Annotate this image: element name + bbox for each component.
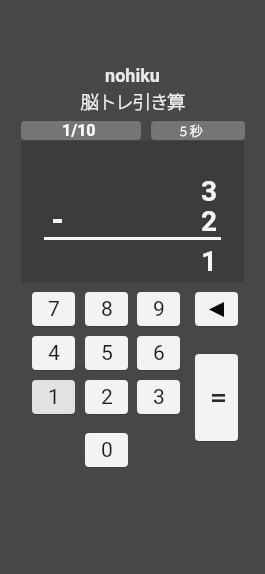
staticText: 脳トレ引き算 <box>0 88 265 115</box>
staticText: 5 秒 <box>180 121 203 140</box>
staticText: 1 <box>201 245 218 278</box>
staticText: 3 <box>201 175 218 208</box>
staticText: 2 <box>201 205 218 238</box>
button[interactable]: 5 <box>85 336 128 370</box>
button[interactable]: 4 <box>32 336 75 370</box>
staticText: 2 <box>101 385 113 410</box>
staticText: 6 <box>153 341 165 366</box>
button[interactable]: 5 秒 <box>151 121 245 140</box>
staticText: 5 <box>101 341 113 366</box>
staticText: 7 <box>48 297 60 322</box>
button[interactable]: 1 <box>32 380 75 414</box>
staticText: 1/10 <box>62 121 96 140</box>
staticText: 8 <box>101 297 113 322</box>
staticText: 9 <box>153 297 165 322</box>
button[interactable]: 6 <box>137 336 180 370</box>
button[interactable]: 1/10 <box>21 121 141 140</box>
button[interactable]: 7 <box>32 292 75 326</box>
button[interactable] <box>195 354 238 441</box>
button[interactable]: 9 <box>137 292 180 326</box>
staticText: nohiku <box>0 65 265 86</box>
staticText: 4 <box>48 341 60 366</box>
staticText: 0 <box>101 438 113 463</box>
button[interactable]: 3 <box>137 380 180 414</box>
button[interactable] <box>195 292 238 326</box>
staticText: 1 <box>48 385 60 410</box>
button[interactable]: 2 <box>85 380 128 414</box>
staticText: 3 <box>153 385 165 410</box>
button[interactable]: 8 <box>85 292 128 326</box>
button[interactable]: 0 <box>85 433 128 467</box>
